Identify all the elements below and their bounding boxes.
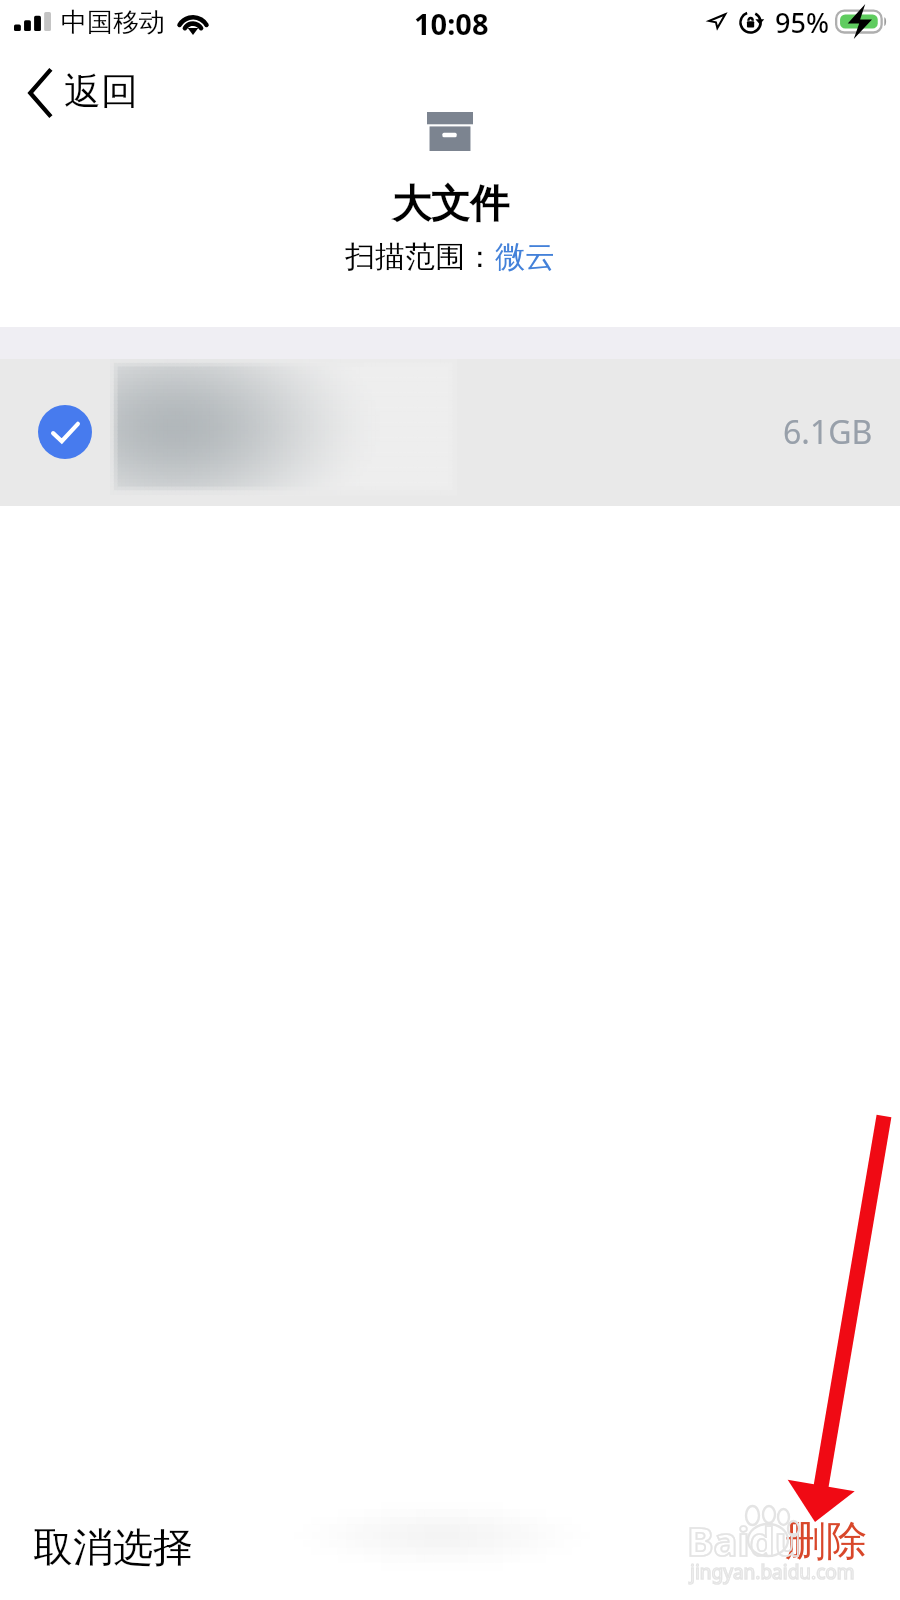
staticText: 大文件 bbox=[392, 179, 509, 228]
button[interactable]: 删除 bbox=[769, 1504, 883, 1580]
button[interactable]: Selected bbox=[0, 359, 900, 506]
button[interactable]: Selected bbox=[38, 405, 92, 459]
staticText: 返回 bbox=[64, 68, 138, 115]
staticText: 95% bbox=[775, 4, 829, 41]
button[interactable]: 返回 Back bbox=[21, 65, 144, 121]
button[interactable]: 微云 bbox=[495, 238, 555, 276]
staticText: 6.1GB bbox=[783, 410, 873, 454]
staticText: 10:08 bbox=[414, 4, 489, 43]
staticText: 删除 bbox=[785, 1516, 867, 1568]
staticText: 取消选择 bbox=[33, 1522, 193, 1572]
staticText: 扫描范围： bbox=[345, 238, 495, 276]
staticText: Baidu bbox=[687, 1513, 801, 1567]
staticText: jingyan.baidu.com bbox=[690, 1559, 855, 1585]
staticText: 中国移动 bbox=[61, 6, 165, 39]
button[interactable]: 取消选择 bbox=[17, 1510, 209, 1584]
